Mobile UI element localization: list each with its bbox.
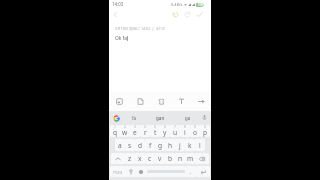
staticText: c	[148, 154, 152, 163]
button[interactable]: x	[135, 153, 145, 164]
staticText: 14:03	[112, 1, 124, 7]
staticText: l	[199, 141, 201, 150]
staticText: 9	[194, 125, 196, 129]
staticText: h	[168, 141, 173, 150]
button[interactable]: Space	[146, 166, 186, 177]
button[interactable]: l	[195, 139, 205, 151]
button[interactable]: b	[165, 153, 175, 164]
button[interactable]: 0	[200, 125, 210, 137]
staticText: q	[113, 128, 118, 137]
button[interactable]: Clipboard	[109, 92, 130, 111]
button[interactable]: 3	[130, 125, 140, 137]
button[interactable]: d	[135, 139, 145, 151]
staticText: r	[144, 128, 147, 137]
button[interactable]: j	[175, 139, 185, 151]
staticText: d	[138, 141, 143, 150]
button[interactable]: ga	[174, 111, 201, 124]
staticText: 3月18日 星期二 14:02 | 4个字	[115, 26, 166, 31]
staticText: e	[133, 128, 137, 137]
button[interactable]: Enter	[196, 166, 210, 177]
staticText: ?123	[113, 169, 123, 175]
staticText: p	[203, 128, 208, 137]
button[interactable]: Change language	[136, 166, 146, 177]
staticText: fa	[132, 115, 136, 121]
button[interactable]: Stickers	[151, 92, 171, 111]
button[interactable]: Backspace	[195, 153, 209, 164]
button[interactable]: 2	[120, 125, 130, 137]
staticText: 3	[134, 125, 136, 129]
button[interactable]: k	[185, 139, 195, 151]
button[interactable]: 6	[160, 125, 170, 137]
staticText: Ok fa	[115, 35, 127, 42]
button[interactable]: m	[185, 153, 195, 164]
button[interactable]: Pin	[126, 166, 136, 177]
staticText: b	[168, 154, 173, 163]
staticText: u	[173, 128, 178, 137]
staticText: 8	[184, 125, 186, 129]
staticText: s	[128, 141, 132, 150]
staticText: 0.4K/s	[171, 2, 183, 7]
button[interactable]: 7	[170, 125, 180, 137]
button[interactable]: fa	[120, 111, 147, 124]
staticText: ga	[185, 115, 191, 121]
staticText: j	[179, 141, 181, 150]
button[interactable]: Back	[109, 8, 121, 20]
staticText: y	[163, 128, 167, 137]
staticText: 1	[114, 125, 116, 129]
button[interactable]: g	[155, 139, 165, 151]
staticText: t	[154, 128, 157, 137]
staticText: gan	[156, 115, 165, 121]
staticText: g	[158, 141, 163, 150]
staticText: 7	[174, 125, 176, 129]
button[interactable]: ?123	[110, 166, 126, 177]
button[interactable]: 1	[110, 125, 120, 137]
staticText: a	[118, 141, 122, 150]
button[interactable]: h	[165, 139, 175, 151]
staticText: 6	[164, 125, 166, 129]
staticText: n	[178, 154, 183, 163]
staticText: 100	[198, 3, 203, 7]
button[interactable]: Done	[193, 8, 205, 20]
staticText: f	[149, 141, 152, 150]
button[interactable]: n	[175, 153, 185, 164]
button[interactable]: Sticker	[130, 92, 151, 111]
button[interactable]: 8	[180, 125, 190, 137]
button[interactable]: Shift	[111, 153, 125, 164]
button[interactable]: z	[125, 153, 135, 164]
staticText: m	[187, 154, 194, 163]
button[interactable]: c	[145, 153, 155, 164]
staticText: 2	[124, 125, 126, 129]
button[interactable]: Voice input	[201, 114, 208, 121]
button[interactable]: s	[125, 139, 135, 151]
button[interactable]: 4	[140, 125, 150, 137]
button[interactable]: Undo	[169, 8, 181, 20]
staticText: w	[122, 128, 128, 137]
button[interactable]: Google search	[112, 114, 120, 122]
staticText: o	[193, 128, 197, 137]
staticText: x	[138, 154, 142, 163]
button[interactable]: More	[191, 92, 211, 111]
button[interactable]: .	[186, 166, 196, 177]
button[interactable]: Redo	[181, 8, 193, 20]
staticText: i	[184, 128, 186, 137]
staticText: z	[128, 154, 132, 163]
button[interactable]: 5	[150, 125, 160, 137]
button[interactable]: 9	[190, 125, 200, 137]
button[interactable]: v	[155, 153, 165, 164]
staticText: k	[188, 141, 192, 150]
button[interactable]: f	[145, 139, 155, 151]
staticText: 4	[144, 125, 146, 129]
button[interactable]: Text format	[171, 92, 191, 111]
staticText: v	[158, 154, 162, 163]
staticText: .	[190, 168, 192, 176]
button[interactable]: gan	[147, 111, 174, 124]
staticText: 5	[154, 125, 156, 129]
staticText: 0	[204, 125, 206, 129]
button[interactable]: a	[115, 139, 125, 151]
